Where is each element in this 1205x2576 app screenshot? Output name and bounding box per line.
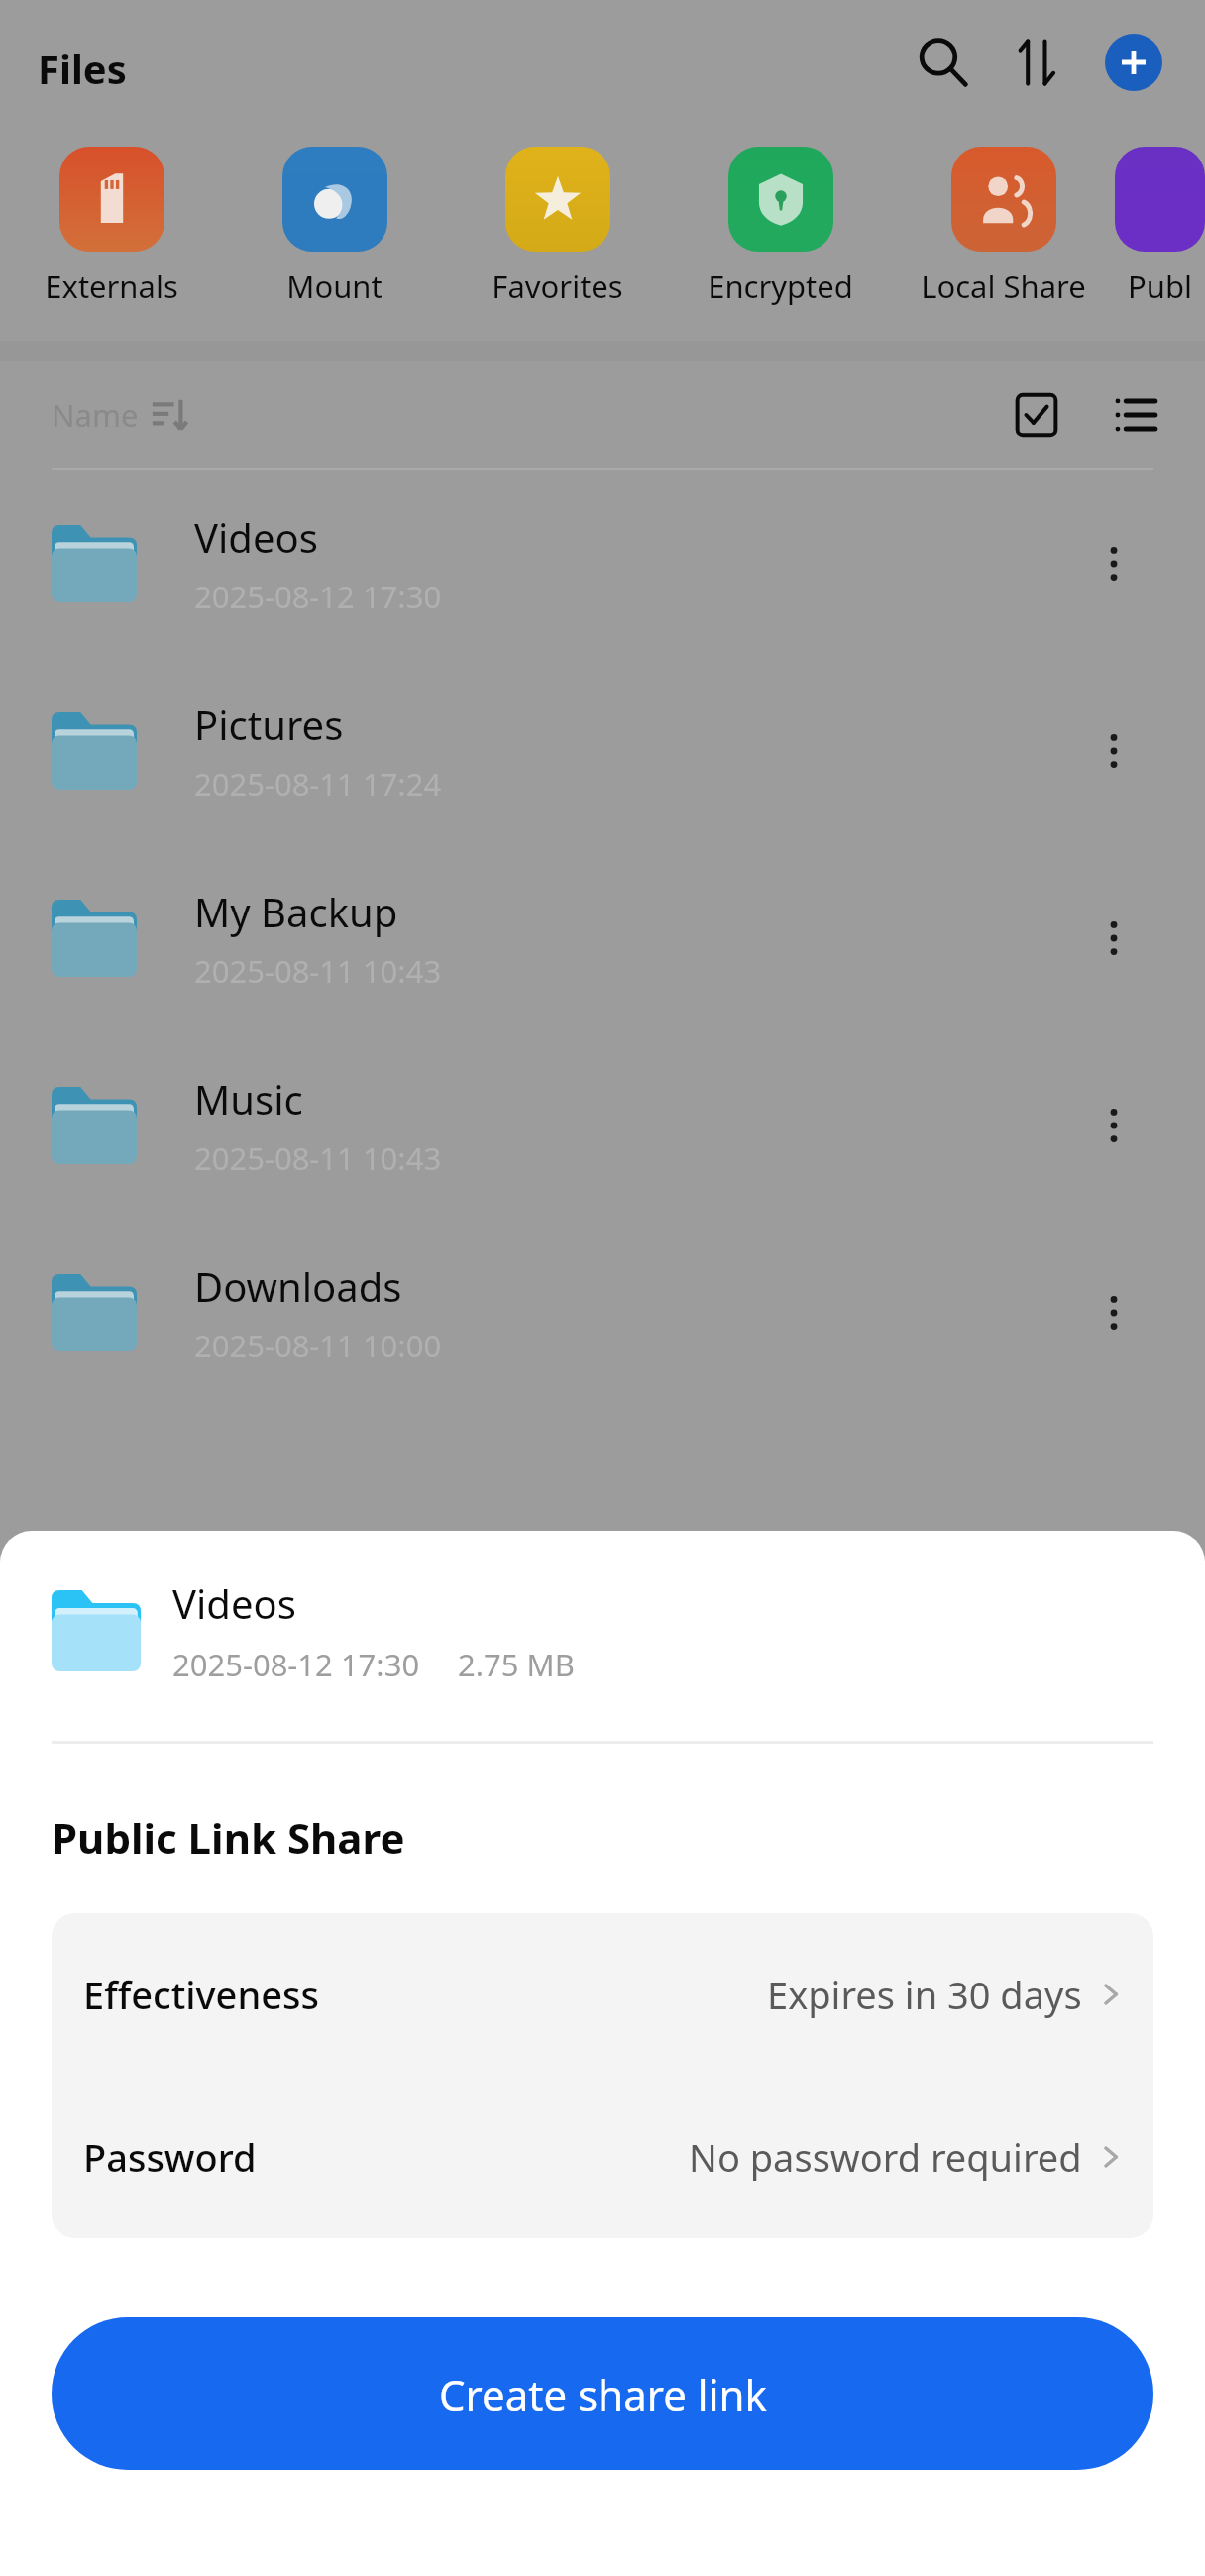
button[interactable]: View mode xyxy=(1096,376,1175,455)
button[interactable]: More options xyxy=(1074,524,1153,603)
staticText: 2025-08-12 17:30 xyxy=(194,576,442,617)
staticText: 2025-08-11 10:00 xyxy=(194,1325,442,1366)
button[interactable]: Password xyxy=(52,2076,1153,2238)
button[interactable]: Search xyxy=(896,15,991,110)
staticText: Music xyxy=(194,1072,303,1126)
staticText: Externals xyxy=(45,266,178,307)
staticText: Password xyxy=(83,2131,257,2183)
button[interactable]: Effectiveness xyxy=(52,1913,1153,2076)
button[interactable]: Select all xyxy=(993,372,1080,459)
staticText: Effectiveness xyxy=(83,1969,319,2020)
staticText: Publ xyxy=(1128,266,1192,307)
staticText: Encrypted xyxy=(708,266,853,307)
staticText: Favorites xyxy=(492,266,623,307)
button[interactable]: Local Share xyxy=(892,144,1115,307)
staticText: Local Share xyxy=(921,266,1086,307)
button[interactable]: Pictures xyxy=(0,657,1205,844)
staticText: Downloads xyxy=(194,1259,402,1313)
staticText: Expires in 30 days xyxy=(767,1969,1082,2020)
button[interactable]: Downloads xyxy=(0,1219,1205,1406)
button[interactable]: More options xyxy=(1074,711,1153,791)
staticText: No password required xyxy=(689,2131,1082,2183)
staticText: 2025-08-12 17:30 xyxy=(172,1644,420,1685)
button[interactable]: Videos xyxy=(0,470,1205,657)
button[interactable]: More options xyxy=(1074,899,1153,978)
staticText: Create share link xyxy=(439,2366,767,2422)
staticText: 2025-08-11 10:43 xyxy=(194,950,442,992)
button[interactable]: My Backup xyxy=(0,844,1205,1031)
button[interactable]: More options xyxy=(1074,1273,1153,1352)
button[interactable]: Favorites xyxy=(446,144,669,307)
staticText: Videos xyxy=(172,1576,296,1630)
button[interactable]: Externals xyxy=(0,144,223,307)
button[interactable]: More options xyxy=(1074,1086,1153,1165)
staticText: 2025-08-11 17:24 xyxy=(194,763,442,805)
button[interactable]: Add xyxy=(1086,15,1181,110)
staticText: Name xyxy=(52,394,139,436)
staticText: Videos xyxy=(194,510,318,564)
button[interactable]: Encrypted xyxy=(669,144,892,307)
button[interactable]: Name xyxy=(52,394,188,436)
button[interactable]: Sort xyxy=(991,15,1086,110)
button[interactable]: Mount xyxy=(223,144,446,307)
staticText: Pictures xyxy=(194,698,344,751)
staticText: Mount xyxy=(286,266,383,307)
button[interactable]: Music xyxy=(0,1031,1205,1219)
staticText: My Backup xyxy=(194,885,398,938)
button[interactable]: Publ xyxy=(1115,144,1205,307)
staticText: 2.75 MB xyxy=(458,1644,575,1685)
staticText: Files xyxy=(38,42,127,95)
button[interactable]: Create share link xyxy=(52,2317,1153,2470)
staticText: Public Link Share xyxy=(52,1809,405,1866)
staticText: 2025-08-11 10:43 xyxy=(194,1137,442,1179)
